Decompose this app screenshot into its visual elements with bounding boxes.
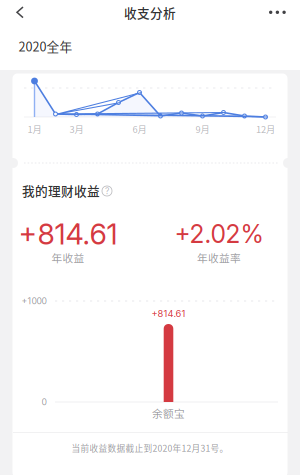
staticText: +814.61 (151, 308, 185, 319)
staticText: ? (105, 186, 109, 196)
button[interactable]: More options (257, 0, 300, 24)
staticText: 12月 (256, 122, 275, 136)
staticText: 余额宝 (152, 405, 185, 421)
staticText: +1000 (21, 296, 46, 306)
staticText: 年收益 (51, 250, 84, 265)
staticText: 0 (41, 397, 46, 407)
staticText: +814.61 (18, 217, 117, 251)
staticText: 年收益率 (197, 250, 241, 265)
staticText: 3月 (69, 122, 83, 136)
button[interactable]: Back (0, 0, 36, 25)
staticText: 当前收益数据截止到2020年12月31号。 (71, 442, 228, 454)
staticText: 6月 (132, 122, 146, 136)
staticText: 9月 (195, 122, 209, 136)
staticText: +2.02% (174, 219, 263, 249)
staticText: 收支分析 (124, 3, 176, 22)
staticText: 2020全年 (18, 37, 72, 55)
staticText: 我的理财收益 (22, 181, 100, 200)
staticText: 1月 (27, 122, 41, 136)
